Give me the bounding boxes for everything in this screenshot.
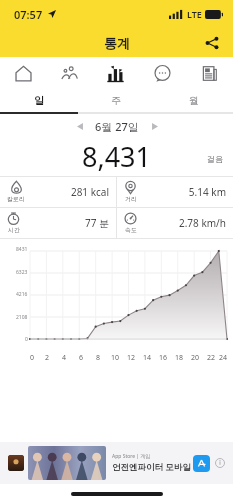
staticText: 칼로리 — [7, 195, 25, 203]
staticText: 77 분 — [20, 216, 109, 230]
staticText: 언전엔파이터 모바일 — [112, 461, 191, 473]
staticText: 2 — [45, 353, 50, 363]
staticText: 0 — [25, 336, 28, 343]
staticText: 8 — [96, 353, 101, 363]
staticText: 22 — [207, 353, 216, 363]
staticText: 14 — [143, 353, 152, 363]
button[interactable]: Next day — [145, 117, 163, 135]
staticText: 2108 — [16, 314, 28, 321]
staticText: LTE — [187, 8, 202, 20]
staticText: 일 — [34, 94, 44, 107]
button[interactable]: 칼로리 — [0, 177, 116, 207]
staticText: App Store | 게임 — [112, 453, 151, 460]
staticText: 월 — [189, 94, 199, 107]
staticText: 8431 — [16, 246, 28, 253]
button[interactable]: Previous day — [71, 117, 89, 135]
staticText: 16 — [159, 353, 168, 363]
staticText: 4216 — [16, 291, 28, 298]
button[interactable]: 거리 — [117, 177, 233, 207]
staticText: 통계 — [104, 35, 130, 51]
staticText: 시간 — [8, 226, 20, 234]
staticText: 10 — [111, 353, 120, 363]
staticText: 24 — [219, 353, 227, 363]
button[interactable]: 시간 — [0, 208, 116, 238]
staticText: 6월 27일 — [95, 119, 139, 134]
button[interactable]: Open in App Store — [193, 455, 210, 472]
button[interactable]: 일 — [0, 89, 77, 112]
staticText: 6 — [79, 353, 84, 363]
button[interactable]: News — [186, 57, 233, 89]
button[interactable]: Statistics — [92, 57, 139, 89]
button[interactable]: Chat — [139, 57, 186, 89]
staticText: 0 — [30, 353, 35, 363]
staticText: 거리 — [125, 195, 137, 203]
staticText: 2.78 km/h — [137, 216, 226, 230]
staticText: 8,431 — [82, 138, 152, 171]
button[interactable]: Home — [0, 57, 46, 89]
button[interactable]: 월 — [155, 89, 233, 112]
staticText: 걸음 — [207, 154, 223, 164]
staticText: 20 — [191, 353, 200, 363]
staticText: 12 — [127, 353, 136, 363]
staticText: 4 — [62, 353, 67, 363]
button[interactable]: App Store | 게임 — [0, 442, 233, 484]
staticText: 281 kcal — [25, 185, 109, 199]
button[interactable]: 주 — [77, 89, 155, 112]
button[interactable]: Ad info — [215, 458, 225, 468]
button[interactable]: 속도 — [117, 208, 233, 238]
staticText: 18 — [175, 353, 184, 363]
button[interactable]: Share — [199, 30, 225, 56]
staticText: 07:57 — [14, 7, 43, 22]
staticText: 5.14 km — [137, 185, 226, 199]
button[interactable]: Friends — [46, 57, 92, 89]
staticText: 속도 — [125, 226, 137, 234]
staticText: 주 — [111, 94, 121, 107]
staticText: 6323 — [16, 269, 28, 276]
